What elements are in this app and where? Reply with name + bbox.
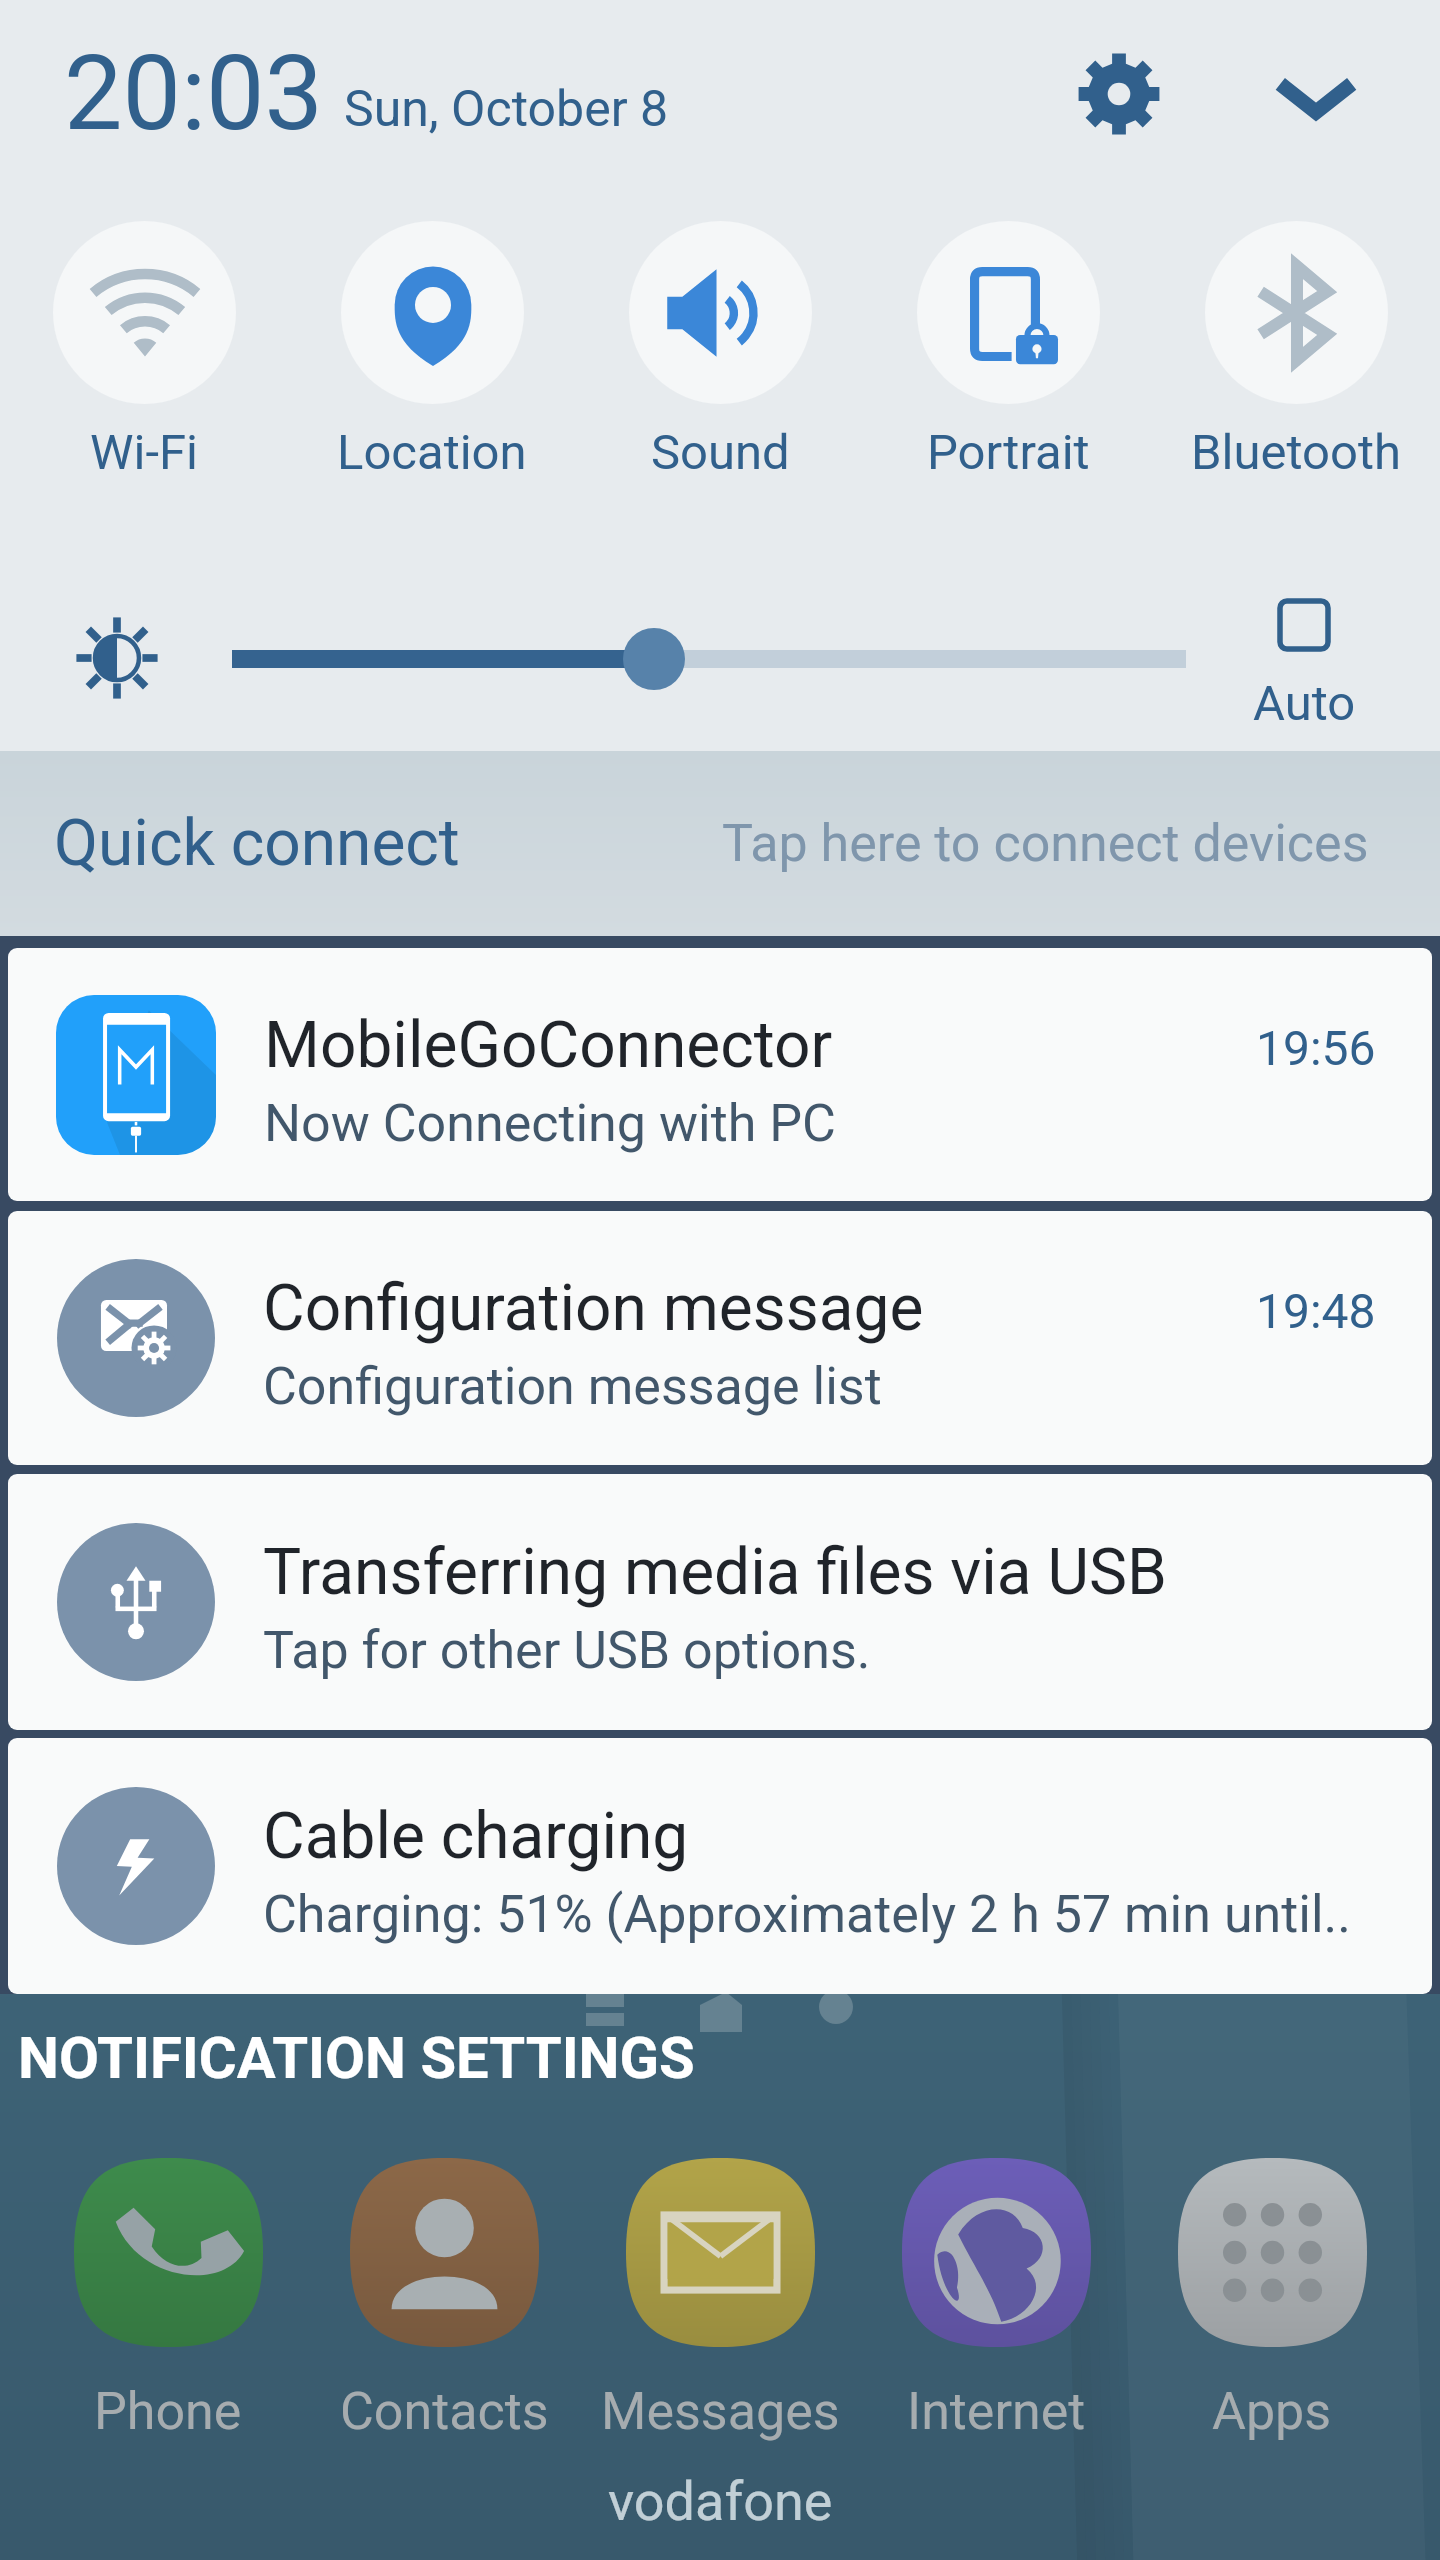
staticText: Configuration message list	[263, 1356, 882, 1417]
staticText: 20:03	[64, 33, 323, 155]
button[interactable]: MobileGoConnector	[8, 948, 1432, 1201]
button[interactable]: Quick connect	[0, 751, 1440, 936]
button[interactable]: Location	[288, 196, 576, 481]
staticText: Tap for other USB options.	[263, 1620, 871, 1681]
staticText: Sun, October 8	[344, 80, 669, 139]
button[interactable]: Contacts	[306, 2158, 582, 2442]
staticText: Cable charging	[263, 1799, 689, 1874]
staticText: Sound	[651, 424, 790, 481]
button[interactable]: Transferring media files via USB	[8, 1474, 1432, 1730]
button[interactable]: Internet	[858, 2158, 1134, 2442]
staticText: vodafone	[608, 2470, 833, 2533]
button[interactable]: Brightness	[623, 628, 685, 690]
staticText: Portrait	[927, 424, 1090, 481]
staticText: 19:56	[1256, 1020, 1376, 1076]
staticText: Tap here to connect devices	[722, 813, 1369, 874]
button[interactable]: Configuration message	[8, 1211, 1432, 1465]
staticText: Contacts	[340, 2381, 549, 2442]
staticText: MobileGoConnector	[264, 1008, 833, 1083]
staticText: Now Connecting with PC	[264, 1093, 836, 1154]
button[interactable]: Wi-Fi	[0, 196, 288, 481]
staticText: Phone	[94, 2381, 242, 2442]
staticText: Auto	[1253, 675, 1356, 732]
staticText: Wi-Fi	[90, 424, 198, 481]
button[interactable]: Bluetooth	[1152, 196, 1440, 481]
staticText: Configuration message	[263, 1271, 924, 1346]
staticText: Transferring media files via USB	[263, 1535, 1167, 1610]
button[interactable]: Sound	[576, 196, 864, 481]
staticText: Bluetooth	[1191, 424, 1401, 481]
staticText: NOTIFICATION SETTINGS	[18, 2024, 695, 2092]
button[interactable]: Apps	[1134, 2158, 1410, 2442]
staticText: 19:48	[1256, 1283, 1376, 1339]
staticText: Apps	[1212, 2381, 1332, 2442]
button[interactable]: Phone	[30, 2158, 306, 2442]
staticText: Internet	[907, 2381, 1086, 2442]
button[interactable]: Settings	[1049, 24, 1189, 164]
button[interactable]: Collapse panel	[1246, 29, 1386, 169]
button[interactable]: Messages	[582, 2158, 858, 2442]
staticText: Charging: 51% (Approximately 2 h 57 min …	[263, 1884, 1351, 1945]
button[interactable]: Cable charging	[8, 1738, 1432, 1994]
staticText: Location	[337, 424, 527, 481]
staticText: Quick connect	[54, 806, 460, 881]
button[interactable]: Portrait	[864, 196, 1152, 481]
staticText: Messages	[601, 2381, 840, 2442]
button[interactable]: Auto brightness	[1226, 598, 1382, 732]
